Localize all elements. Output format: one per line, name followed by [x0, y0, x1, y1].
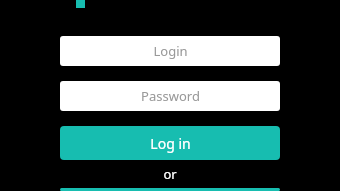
- button[interactable]: Password: [60, 81, 280, 111]
- button[interactable]: Log in: [60, 126, 280, 160]
- button[interactable]: Sign up: [60, 188, 280, 191]
- staticText: Login: [153, 42, 188, 60]
- staticText: Log in: [150, 134, 191, 153]
- staticText: Password: [141, 87, 200, 105]
- button[interactable]: Login: [60, 36, 280, 66]
- staticText: or: [163, 165, 177, 183]
